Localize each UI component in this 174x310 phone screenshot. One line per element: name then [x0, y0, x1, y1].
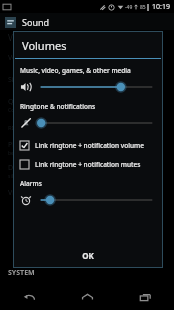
- staticText: Volume panel: [8, 53, 54, 63]
- button[interactable]: OK: [13, 242, 163, 268]
- staticText: Volumes: [8, 32, 41, 43]
- staticText: 85: [140, 4, 146, 11]
- staticText: Link ringtone + notification mutes: [35, 160, 141, 169]
- staticText: Phone ringtone: [8, 140, 60, 150]
- button[interactable]: Alarm volume: [20, 192, 156, 208]
- staticText: RINGTONE & NOTIFICATIONS: [8, 124, 91, 132]
- staticText: Ringtone & notifications: [20, 102, 96, 111]
- staticText: SYSTEM: [8, 268, 35, 278]
- button[interactable]: Home: [58, 284, 116, 310]
- button[interactable]: Media volume: [20, 79, 156, 95]
- staticText: Silent mode: [8, 75, 48, 85]
- staticText: silent: [8, 173, 21, 180]
- staticText: beBestThatSadcatDeUglyMainTitleRingtone: [8, 150, 111, 157]
- other: Alarm volume: [20, 194, 32, 206]
- button[interactable]: Ringtone muted: [20, 115, 156, 131]
- button[interactable]: Recent apps: [116, 284, 174, 310]
- staticText: 10:19: [152, 2, 170, 12]
- staticText: Link ringtone + notification volume: [35, 141, 144, 150]
- staticText: Music, video, games, & other media: [20, 66, 131, 75]
- staticText: Configure the hours the device should be…: [8, 107, 119, 114]
- other: Ringtone muted: [20, 117, 32, 129]
- staticText: -49: [125, 4, 133, 11]
- button[interactable]: Link ringtone + notification mutes: [20, 158, 156, 171]
- staticText: Alarms: [20, 179, 42, 188]
- other: Media volume: [20, 81, 32, 93]
- staticText: Quiet hours: [8, 97, 48, 107]
- staticText: Volumes: [22, 38, 67, 53]
- staticText: Vibrate and ring: [8, 188, 61, 198]
- staticText: Sound: [22, 16, 50, 28]
- staticText: OK: [82, 250, 94, 261]
- staticText: Default notification: [8, 163, 72, 173]
- button[interactable]: Back: [0, 284, 58, 310]
- button[interactable]: Link ringtone + notification volume: [20, 139, 156, 152]
